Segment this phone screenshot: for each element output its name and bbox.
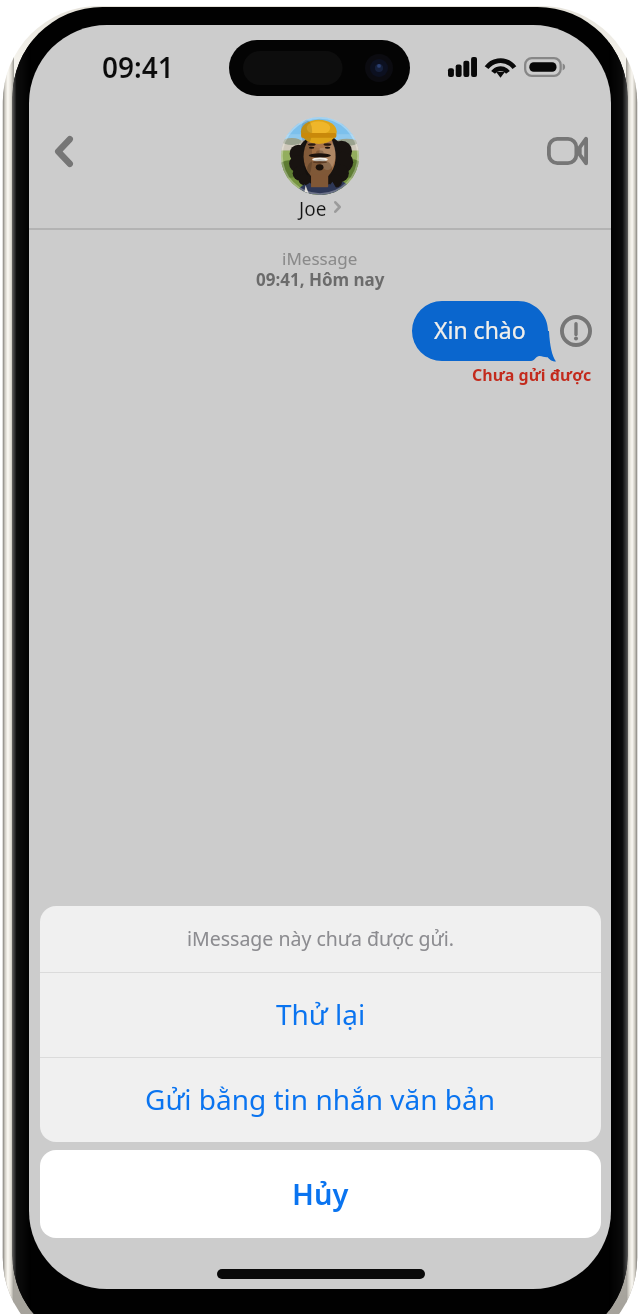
staticText: Thử lại [276, 995, 366, 1033]
button[interactable]: Message not delivered [560, 315, 592, 347]
staticText: 09:41 [102, 48, 174, 86]
button[interactable]: Gửi bằng tin nhắn văn bản [40, 1058, 601, 1142]
staticText: Chưa gửi được [472, 364, 592, 386]
button[interactable]: FaceTime video call [534, 124, 600, 178]
button[interactable]: Thử lại [40, 973, 601, 1057]
staticText: iMessage này chưa được gửi. [187, 925, 454, 952]
button[interactable]: Joe [29, 117, 611, 222]
staticText: 09:41, Hôm nay [256, 268, 385, 291]
staticText: Hủy [292, 1174, 349, 1213]
staticText: Xin chào [434, 314, 526, 345]
button[interactable]: Hủy [40, 1150, 601, 1238]
button[interactable]: Back [40, 121, 88, 181]
staticText: Gửi bằng tin nhắn văn bản [145, 1080, 496, 1118]
staticText: iMessage [282, 247, 358, 270]
staticText: Joe [299, 196, 327, 222]
